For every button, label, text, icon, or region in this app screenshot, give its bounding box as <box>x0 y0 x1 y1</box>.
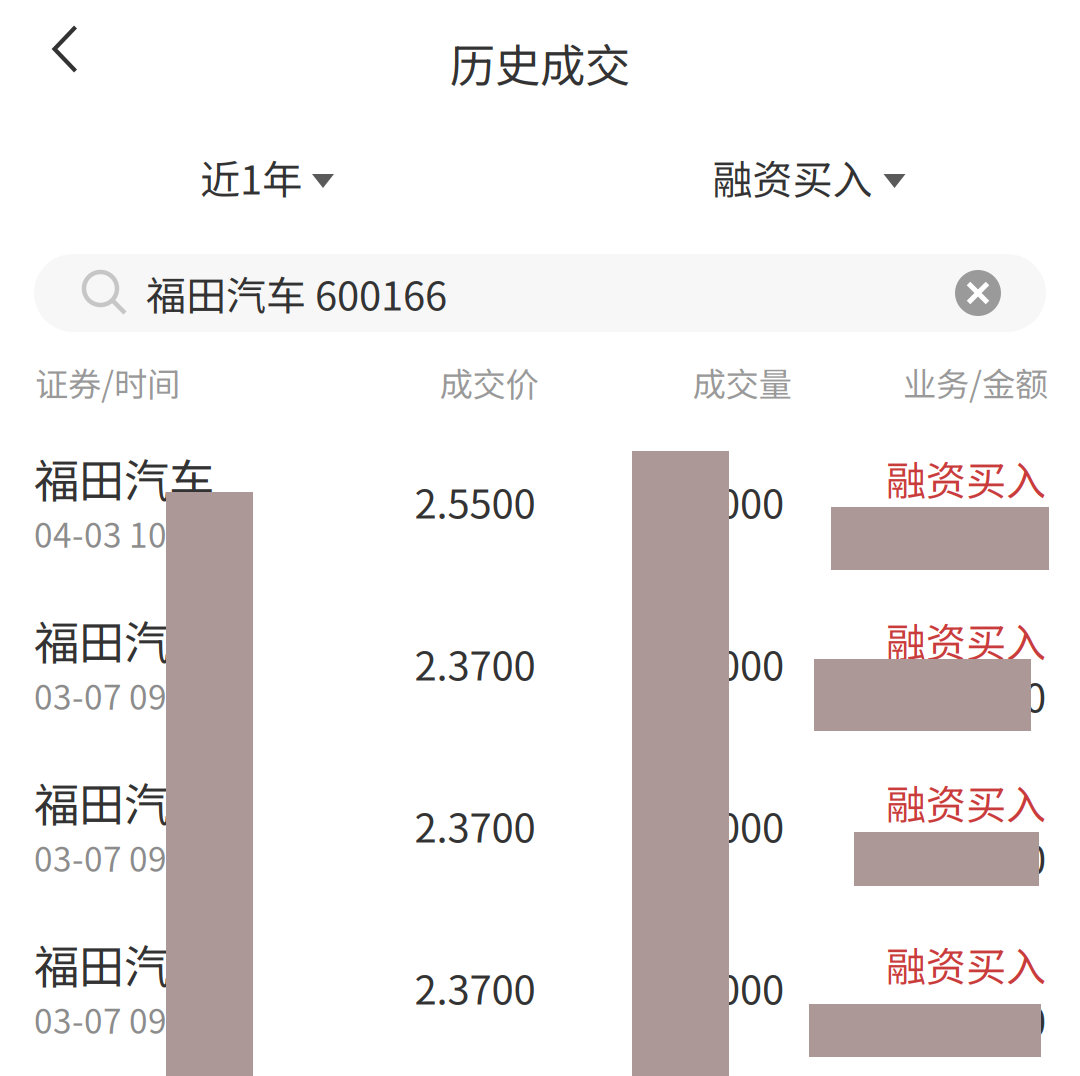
staticText: 福田汽车 <box>34 769 214 835</box>
button[interactable]: 福田汽车 <box>0 910 1080 1072</box>
staticText: 03-07 09:38 <box>34 833 214 881</box>
button[interactable]: Back <box>22 6 108 92</box>
staticText: 03-07 09:42 <box>34 671 214 719</box>
button[interactable]: 近1年 <box>157 128 377 226</box>
staticText: 2.3700 <box>414 796 535 854</box>
staticText: 福田汽车 <box>34 931 214 997</box>
button[interactable]: 福田汽车 <box>0 748 1080 910</box>
staticText: 成交量 <box>692 358 791 406</box>
button[interactable]: 福田汽车 <box>0 586 1080 748</box>
staticText: 2.3700 <box>414 634 535 692</box>
staticText: 福田汽车 <box>34 607 214 673</box>
staticText: 03-07 09:31 <box>34 995 214 1043</box>
staticText: 23700.00 <box>881 828 1046 886</box>
staticText: 20000 <box>674 472 784 530</box>
staticText: 10000 <box>674 634 784 692</box>
staticText: 证券/时间 <box>35 358 180 406</box>
staticText: 2.5500 <box>414 472 535 530</box>
staticText: 2.3700 <box>414 958 535 1016</box>
button[interactable]: 福田汽车 <box>0 424 1080 586</box>
staticText: 业务/金额 <box>903 358 1048 406</box>
staticText: 23700.00 <box>881 666 1046 724</box>
staticText: 04-03 10:25 <box>34 509 214 557</box>
staticText: 福田汽车 <box>34 445 214 511</box>
staticText: 融资买入 <box>886 611 1046 669</box>
staticText: 融资买入 <box>886 935 1046 993</box>
staticText: 融资买入 <box>886 449 1046 507</box>
staticText: 融资买入 <box>712 148 872 206</box>
button[interactable]: 融资买入 <box>679 128 939 226</box>
staticText: 10000 <box>674 796 784 854</box>
staticText: 近1年 <box>200 148 302 206</box>
staticText: 福田汽车 600166 <box>146 264 447 322</box>
button[interactable]: 福田汽车 600166 <box>34 254 1046 332</box>
staticText: 历史成交 <box>450 30 630 96</box>
staticText: 成交价 <box>439 358 538 406</box>
staticText: 融资买入 <box>886 773 1046 831</box>
staticText: 51000.00 <box>881 504 1046 562</box>
staticText: 23700.00 <box>881 990 1046 1048</box>
staticText: 10000 <box>674 958 784 1016</box>
